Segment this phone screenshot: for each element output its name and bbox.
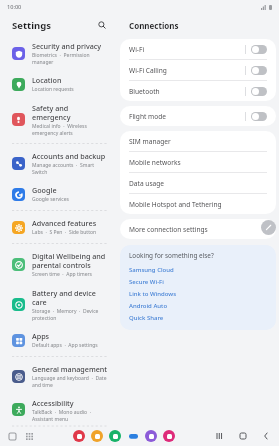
staticText: Digital Wellbeing and parental controls bbox=[32, 251, 108, 270]
button[interactable]: Flight mode bbox=[251, 112, 267, 121]
button[interactable]: Camera bbox=[163, 430, 175, 442]
staticText: Labs · S Pen · Side button bbox=[32, 229, 97, 236]
button[interactable]: Battery and device care bbox=[4, 283, 114, 326]
button[interactable]: Messages bbox=[127, 430, 139, 442]
staticText: TalkBack · Mono audio · Assistant menu bbox=[32, 409, 108, 421]
button[interactable]: Accounts and backup bbox=[4, 146, 114, 180]
button[interactable]: Mobile Hotspot and Tethering bbox=[120, 194, 276, 214]
staticText: Flight mode bbox=[129, 112, 166, 121]
button[interactable]: Apps bbox=[4, 326, 114, 354]
staticText: Samsung Cloud bbox=[129, 266, 174, 274]
staticText: More connection settings bbox=[129, 225, 208, 234]
staticText: General management bbox=[32, 364, 108, 374]
staticText: Connections bbox=[129, 20, 179, 31]
button[interactable]: Wi-Fi Calling bbox=[251, 66, 267, 75]
button[interactable]: Digital Wellbeing and parental controls bbox=[4, 246, 114, 283]
button[interactable]: Recents bbox=[7, 431, 18, 442]
button[interactable]: Edit bbox=[261, 220, 276, 235]
staticText: Battery and device care bbox=[32, 288, 108, 307]
button[interactable]: Quick Share bbox=[129, 312, 267, 324]
staticText: Language and keyboard · Date and time bbox=[32, 375, 108, 388]
staticText: Apps bbox=[32, 331, 50, 341]
staticText: Mobile networks bbox=[129, 158, 181, 167]
staticText: Location bbox=[32, 75, 62, 85]
staticText: Location requests bbox=[32, 86, 74, 93]
staticText: Android Auto bbox=[129, 302, 168, 310]
button[interactable]: Security and privacy bbox=[4, 36, 114, 70]
button[interactable]: Wi-Fi Calling bbox=[120, 60, 276, 80]
button[interactable]: Secure Wi-Fi bbox=[129, 276, 267, 288]
button[interactable]: Wi-Fi bbox=[120, 39, 276, 59]
button[interactable]: Bluetooth bbox=[120, 81, 276, 101]
staticText: Advanced features bbox=[32, 218, 97, 228]
button[interactable]: Phone bbox=[109, 430, 121, 442]
button[interactable]: Location bbox=[4, 70, 114, 98]
staticText: Quick Share bbox=[129, 314, 164, 322]
button[interactable]: Search bbox=[96, 19, 108, 31]
button[interactable]: Mobile networks bbox=[120, 152, 276, 172]
staticText: Looking for something else? bbox=[129, 251, 214, 260]
button[interactable]: Files bbox=[91, 430, 103, 442]
staticText: Default apps · App settings bbox=[32, 342, 98, 349]
staticText: Settings bbox=[12, 19, 51, 32]
button[interactable]: Home bbox=[237, 430, 249, 442]
staticText: Bluetooth bbox=[129, 87, 160, 96]
button[interactable]: Back bbox=[260, 430, 272, 442]
staticText: Wi-Fi bbox=[129, 45, 145, 54]
button[interactable]: Apps bbox=[24, 431, 35, 442]
staticText: Screen time · App timers bbox=[32, 271, 92, 278]
button[interactable]: SIM manager bbox=[120, 131, 276, 151]
button[interactable]: Flight mode bbox=[120, 106, 276, 126]
button[interactable]: Samsung Cloud bbox=[129, 264, 267, 276]
button[interactable]: Recent apps bbox=[214, 430, 226, 442]
button[interactable]: Google bbox=[4, 180, 114, 208]
staticText: Google services bbox=[32, 196, 69, 203]
staticText: Manage accounts · Smart Switch bbox=[32, 162, 108, 175]
button[interactable]: Android Auto bbox=[129, 300, 267, 312]
staticText: Medical info · Wireless emergency alerts bbox=[32, 123, 108, 136]
button[interactable]: Bluetooth bbox=[251, 87, 267, 96]
button[interactable]: More connection settings bbox=[120, 219, 276, 239]
button[interactable]: Browser bbox=[145, 430, 157, 442]
staticText: Accessibility bbox=[32, 398, 74, 408]
staticText: Data usage bbox=[129, 179, 165, 188]
button[interactable]: Link to Windows bbox=[129, 288, 267, 300]
button[interactable]: Data usage bbox=[120, 173, 276, 193]
button[interactable]: Safety and emergency bbox=[4, 98, 114, 141]
staticText: Google bbox=[32, 185, 57, 195]
staticText: 10:00 bbox=[7, 3, 22, 11]
staticText: Accounts and backup bbox=[32, 151, 106, 161]
staticText: Link to Windows bbox=[129, 290, 177, 298]
button[interactable]: Accessibility bbox=[4, 393, 114, 426]
staticText: Safety and emergency bbox=[32, 103, 108, 122]
button[interactable]: Office bbox=[73, 430, 85, 442]
staticText: SIM manager bbox=[129, 137, 171, 146]
button[interactable]: Wi-Fi bbox=[251, 45, 267, 54]
staticText: Biometrics · Permission manager bbox=[32, 52, 108, 65]
button[interactable]: Advanced features bbox=[4, 213, 114, 241]
staticText: Storage · Memory · Device protection bbox=[32, 308, 108, 321]
staticText: Wi-Fi Calling bbox=[129, 66, 167, 75]
button[interactable]: General management bbox=[4, 359, 114, 393]
staticText: Secure Wi-Fi bbox=[129, 278, 164, 286]
staticText: Security and privacy bbox=[32, 41, 102, 51]
staticText: Mobile Hotspot and Tethering bbox=[129, 200, 222, 209]
